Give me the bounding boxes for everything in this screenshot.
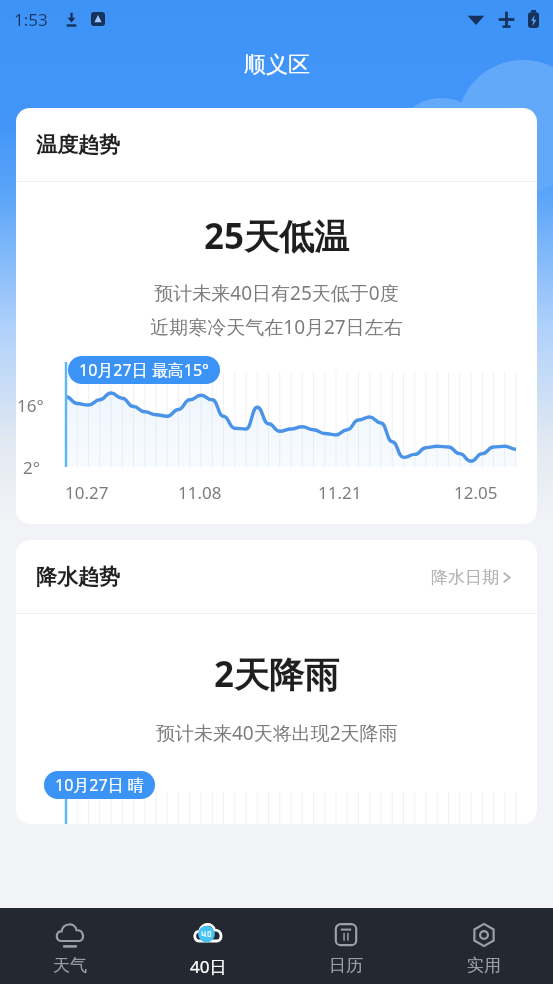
staticText: 降水日期 xyxy=(431,567,499,588)
button[interactable]: 40日 xyxy=(139,908,277,984)
button[interactable]: 实用 xyxy=(415,908,553,984)
staticText: 10.27 xyxy=(65,481,109,504)
staticText: 16° xyxy=(17,394,44,417)
other: 40日 xyxy=(193,920,223,950)
staticText: 顺义区 xyxy=(244,51,310,79)
staticText: 25天低温 xyxy=(204,212,350,260)
button[interactable]: 降水日期 xyxy=(427,563,517,592)
staticText: 10月27日 最高15° xyxy=(79,359,209,381)
staticText: 预计未来40日有25天低于0度 xyxy=(154,280,399,306)
staticText: 近期寒冷天气在10月27日左右 xyxy=(150,314,403,340)
staticText: 实用 xyxy=(467,955,501,976)
staticText: 降水趋势 xyxy=(36,564,120,590)
staticText: 天气 xyxy=(53,955,87,976)
button[interactable]: 天气 xyxy=(0,908,139,984)
staticText: 12.05 xyxy=(454,481,498,504)
staticText: 2天降雨 xyxy=(214,650,340,698)
button[interactable]: 日历 xyxy=(277,908,415,984)
staticText: 40日 xyxy=(190,955,227,978)
staticText: 1:53 xyxy=(14,8,48,31)
other: 日历 xyxy=(331,920,361,950)
staticText: 日历 xyxy=(329,955,363,976)
staticText: 温度趋势 xyxy=(36,132,120,158)
other: 实用 xyxy=(469,920,499,950)
staticText: 11.21 xyxy=(318,481,362,504)
other: 天气 xyxy=(55,920,85,950)
staticText: 2° xyxy=(23,456,40,479)
staticText: 预计未来40天将出现2天降雨 xyxy=(156,720,398,746)
staticText: 11.08 xyxy=(178,481,222,504)
staticText: 10月27日 晴 xyxy=(55,774,144,796)
